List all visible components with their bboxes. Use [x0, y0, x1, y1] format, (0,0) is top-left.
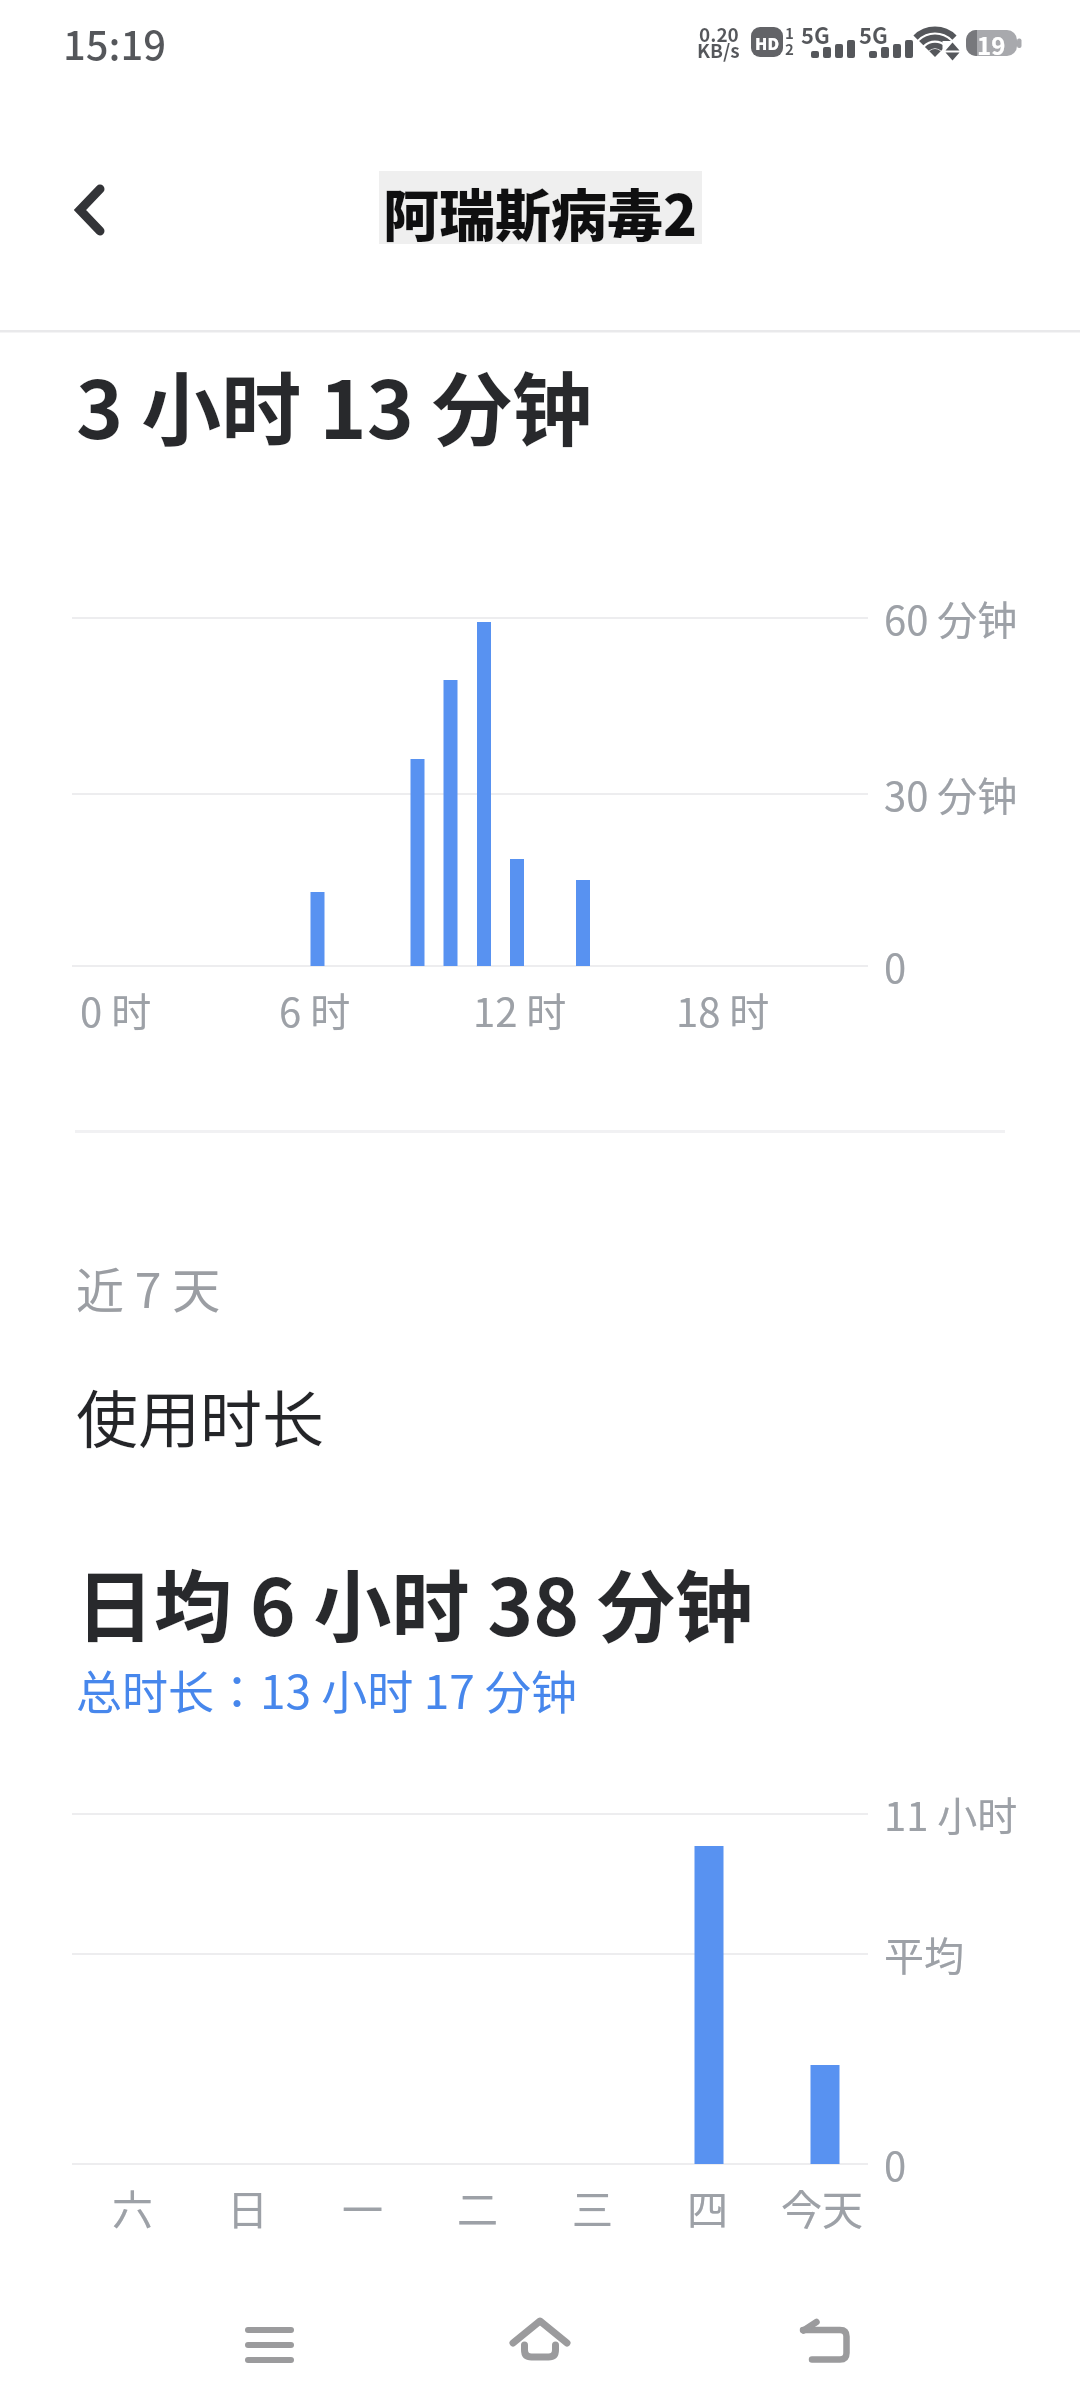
staticText: 0 — [884, 2135, 907, 2193]
staticText: 使用时长 — [76, 1371, 325, 1461]
button[interactable] — [55, 165, 145, 255]
staticText: 阿瑞斯病毒2 — [383, 171, 698, 244]
staticText: 0 — [884, 937, 907, 995]
staticText: 平均 — [884, 1925, 964, 1983]
staticText: 近 7 天 — [76, 1252, 221, 1322]
staticText: 三 — [572, 2177, 613, 2236]
staticText: 18 时 — [676, 981, 770, 1039]
staticText: 6 时 — [279, 981, 351, 1039]
button[interactable] — [470, 2295, 610, 2395]
button[interactable] — [200, 2295, 340, 2395]
staticText: 日均 6 小时 38 分钟 — [76, 1546, 753, 1659]
staticText: 5G — [859, 18, 888, 50]
staticText: 5G — [801, 18, 830, 50]
staticText: 四 — [687, 2177, 728, 2236]
staticText: 六 — [112, 2177, 153, 2236]
staticText: 2 — [785, 38, 794, 60]
staticText: 总时长：13 小时 17 分钟 — [76, 1656, 578, 1723]
staticText: 今天 — [781, 2177, 863, 2236]
staticText: 0 时 — [80, 981, 152, 1039]
staticText: 30 分钟 — [884, 765, 1018, 823]
staticText: 60 分钟 — [884, 589, 1018, 647]
staticText: 12 时 — [473, 981, 567, 1039]
button[interactable] — [755, 2295, 895, 2395]
staticText: 1 — [785, 22, 794, 44]
staticText: 15:19 — [63, 14, 167, 72]
staticText: 一 — [342, 2177, 383, 2236]
staticText: 日 — [227, 2177, 268, 2236]
staticText: 11 小时 — [884, 1785, 1018, 1843]
staticText: KB/s — [697, 36, 740, 64]
staticText: HD — [755, 31, 780, 54]
staticText: 0.20 — [699, 20, 739, 48]
staticText: 3 小时 13 分钟 — [76, 346, 593, 462]
staticText: 19 — [977, 27, 1006, 62]
staticText: 二 — [457, 2177, 498, 2236]
